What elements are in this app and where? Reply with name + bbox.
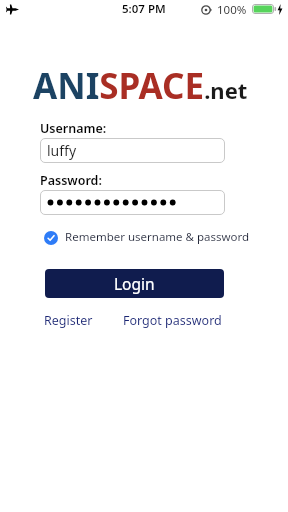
- staticText: Login: [114, 273, 155, 294]
- staticText: 100%: [217, 2, 247, 18]
- staticText: Password:: [40, 172, 102, 189]
- staticText: 5:07 PM: [122, 1, 166, 17]
- button[interactable]: luffy: [40, 138, 225, 163]
- button[interactable]: Forgot password: [123, 312, 222, 329]
- staticText: luffy: [47, 141, 77, 160]
- staticText: ANISPACE.net: [33, 62, 248, 110]
- button[interactable]: Remember username & password: [44, 230, 250, 246]
- button[interactable]: Register: [44, 312, 93, 329]
- button[interactable]: [40, 190, 225, 215]
- button[interactable]: Login: [45, 269, 224, 298]
- staticText: Remember username & password: [65, 229, 250, 245]
- staticText: Username:: [40, 120, 107, 137]
